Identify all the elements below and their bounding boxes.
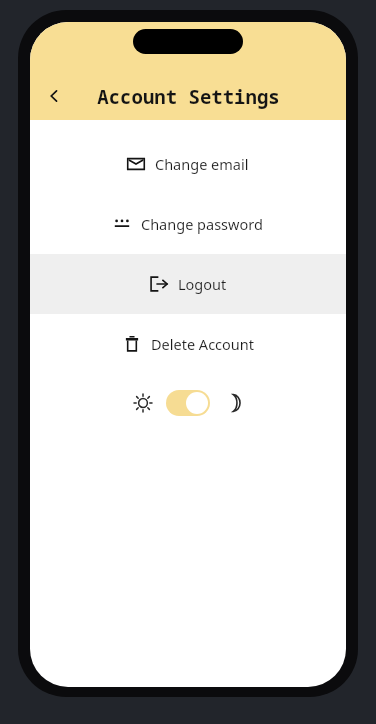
button[interactable]: Change email xyxy=(30,134,346,194)
button[interactable]: Toggle dark mode xyxy=(166,390,210,416)
button[interactable]: Change password xyxy=(30,194,346,254)
staticText: Change password xyxy=(141,214,263,234)
staticText: Logout xyxy=(178,274,227,294)
button[interactable]: Logout xyxy=(30,254,346,314)
button[interactable]: Dark mode xyxy=(220,390,246,416)
staticText: Change email xyxy=(155,154,249,174)
staticText: Delete Account xyxy=(151,334,254,354)
staticText: Account Settings xyxy=(97,84,280,110)
button[interactable]: Light mode xyxy=(130,390,156,416)
button[interactable]: Back xyxy=(36,78,72,114)
button[interactable]: Delete Account xyxy=(30,314,346,374)
